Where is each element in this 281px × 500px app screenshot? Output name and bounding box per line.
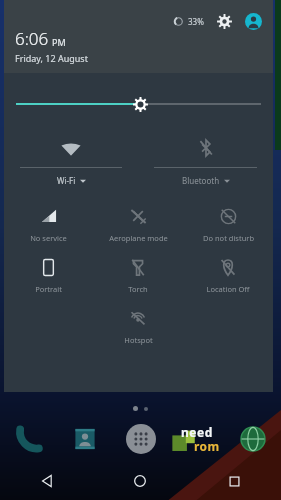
- button[interactable]: Wi-Fi: [4, 136, 138, 186]
- staticText: Bluetooth: [182, 175, 220, 186]
- staticText: PM: [52, 36, 66, 48]
- staticText: need: [181, 424, 213, 440]
- staticText: No service: [30, 233, 67, 243]
- button[interactable]: Portrait: [4, 257, 93, 294]
- staticText: Friday, 12 August: [15, 52, 88, 64]
- button[interactable]: Settings: [215, 12, 233, 30]
- button[interactable]: Home: [93, 462, 187, 500]
- button[interactable]: Brightness: [16, 95, 261, 113]
- button[interactable]: Back: [0, 462, 93, 500]
- button[interactable]: Location Off: [183, 257, 273, 294]
- other: Browser: [240, 426, 266, 452]
- button[interactable]: need: [169, 422, 225, 456]
- button[interactable]: Contacts: [57, 422, 113, 456]
- staticText: 33%: [188, 16, 204, 27]
- other: Phone: [16, 426, 42, 452]
- button[interactable]: Browser: [225, 422, 281, 456]
- button[interactable]: Aeroplane mode: [93, 206, 183, 243]
- staticText: Wi-Fi: [57, 175, 76, 186]
- staticText: Torch: [128, 284, 148, 294]
- staticText: Portrait: [35, 284, 62, 294]
- staticText: Location Off: [206, 284, 250, 294]
- staticText: rom: [194, 438, 220, 452]
- button[interactable]: All apps: [113, 422, 169, 456]
- button[interactable]: No service: [4, 206, 93, 243]
- staticText: 6:06: [15, 27, 49, 50]
- button[interactable]: Phone: [0, 422, 57, 456]
- button[interactable]: Hotspot: [93, 308, 183, 345]
- other: Contacts: [73, 427, 97, 451]
- staticText: Do not disturb: [203, 233, 254, 243]
- other: All apps: [126, 424, 156, 454]
- staticText: Hotspot: [124, 335, 153, 345]
- button[interactable]: Torch: [93, 257, 183, 294]
- button[interactable]: Bluetooth: [138, 136, 273, 186]
- button[interactable]: Do not disturb: [183, 206, 273, 243]
- staticText: Aeroplane mode: [109, 233, 168, 243]
- button[interactable]: Recents: [187, 462, 281, 500]
- button[interactable]: User: [243, 11, 263, 31]
